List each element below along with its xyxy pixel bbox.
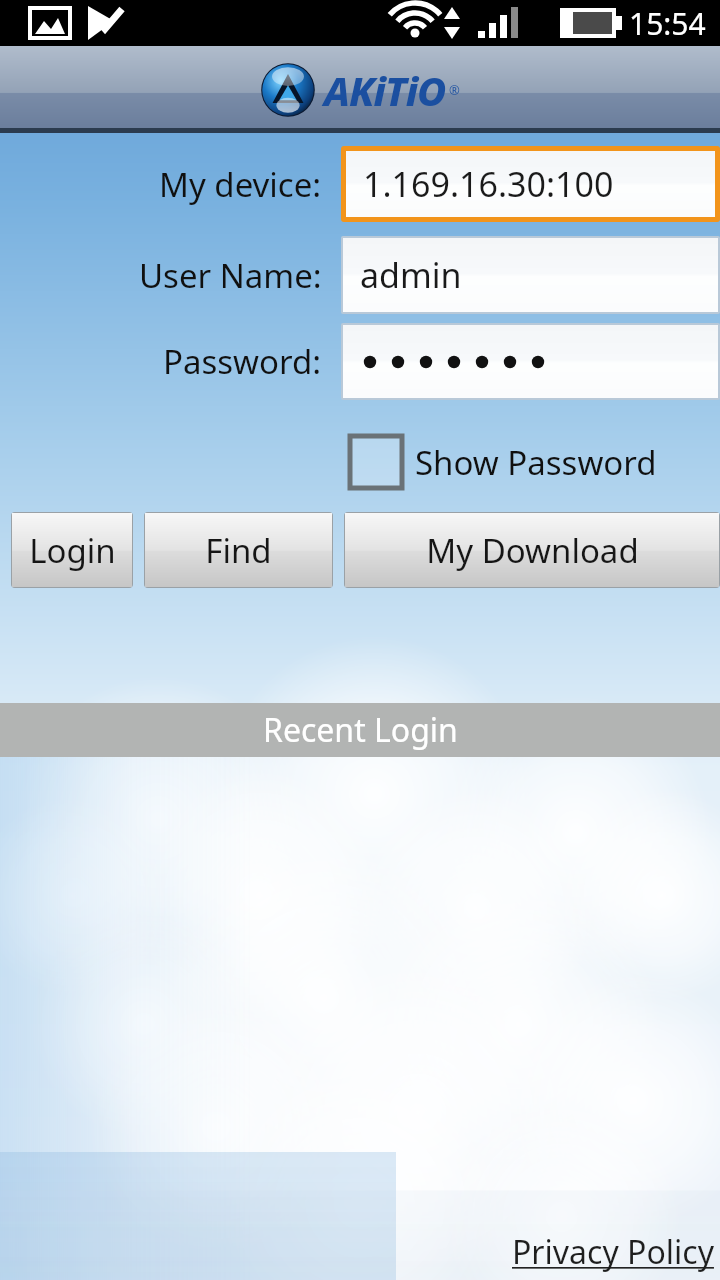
staticText: Find <box>205 528 272 573</box>
button[interactable]: Recent Login <box>0 703 720 757</box>
staticText: 1.169.16.30:100 <box>363 161 614 207</box>
button[interactable]: Privacy Policy <box>512 1230 720 1274</box>
staticText: ® <box>449 81 460 99</box>
staticText: AKiTiO <box>324 63 446 117</box>
button[interactable]: Show Password <box>348 434 661 490</box>
staticText: Recent Login <box>263 708 458 752</box>
staticText: admin <box>360 252 462 298</box>
staticText: Privacy Policy <box>512 1230 714 1274</box>
staticText: 15:54 <box>629 3 706 44</box>
staticText: My device: <box>159 162 322 207</box>
button[interactable]: admin <box>341 236 720 314</box>
button[interactable]: Login <box>11 512 133 588</box>
button[interactable]: My Download <box>344 512 720 588</box>
staticText: My Download <box>426 528 639 573</box>
button[interactable]: Find <box>144 512 333 588</box>
staticText: User Name: <box>139 253 322 298</box>
staticText: Login <box>29 528 116 573</box>
button[interactable] <box>341 323 720 400</box>
button[interactable]: 1.169.16.30:100 <box>341 146 720 222</box>
staticText: Password: <box>163 339 322 384</box>
staticText: Show Password <box>415 440 657 485</box>
